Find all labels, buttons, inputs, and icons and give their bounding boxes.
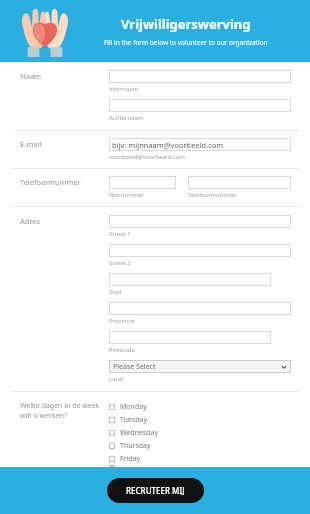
staticText: Telefoonnummer <box>188 191 237 199</box>
button[interactable] <box>109 302 291 315</box>
button[interactable]: Friday <box>109 452 141 465</box>
button[interactable] <box>109 331 271 344</box>
other: Hands holding heart logo <box>14 0 76 62</box>
button[interactable] <box>109 176 176 189</box>
staticText: Fill in the form below to volunteer to o… <box>104 38 268 47</box>
button[interactable] <box>109 70 291 83</box>
staticText: E-mail <box>20 139 42 149</box>
button[interactable] <box>109 99 291 112</box>
button[interactable] <box>188 176 291 189</box>
staticText: Vrijwilligerswerving <box>121 15 251 33</box>
staticText: Netnummer <box>109 191 144 199</box>
staticText: Thursday <box>120 441 151 451</box>
staticText: Achternaam <box>109 114 144 122</box>
button[interactable] <box>109 215 291 228</box>
staticText: Street 1 <box>109 230 131 238</box>
staticText: Friday <box>120 454 141 464</box>
staticText: Street 2 <box>109 259 131 267</box>
button[interactable] <box>109 244 291 257</box>
button[interactable]: Saturday <box>109 465 150 467</box>
staticText: Tuesday <box>120 415 147 425</box>
staticText: RECRUTEER MIJ <box>126 485 185 496</box>
staticText: bijv: mijnnaam@voorbeeld.com <box>112 140 224 150</box>
staticText: Wednesday <box>120 428 159 438</box>
button[interactable]: Wednesday <box>109 426 159 439</box>
staticText: Provincie <box>109 317 135 325</box>
staticText: Adres <box>20 216 41 226</box>
button[interactable] <box>109 273 271 286</box>
staticText: Monday <box>120 402 147 412</box>
button[interactable]: Monday <box>109 400 147 413</box>
staticText: Please Select <box>113 362 156 372</box>
staticText: Telefoonnummer <box>20 177 81 187</box>
staticText: Land <box>109 375 123 383</box>
button[interactable]: RECRUTEER MIJ <box>107 478 204 503</box>
button[interactable]: Tuesday <box>109 413 147 426</box>
staticText: Postcode <box>109 346 135 354</box>
button[interactable]: Thursday <box>109 439 151 452</box>
staticText: Welke dagen in de week wilt u werken? <box>20 401 109 421</box>
button[interactable]: Please Select <box>109 360 291 373</box>
staticText: Stad <box>109 288 122 296</box>
staticText: Naam <box>20 71 42 81</box>
button[interactable]: bijv: mijnnaam@voorbeeld.com <box>109 138 291 151</box>
staticText: voorbeeld@voorbeeld.com <box>109 153 186 161</box>
staticText: Voornaam <box>109 85 139 93</box>
